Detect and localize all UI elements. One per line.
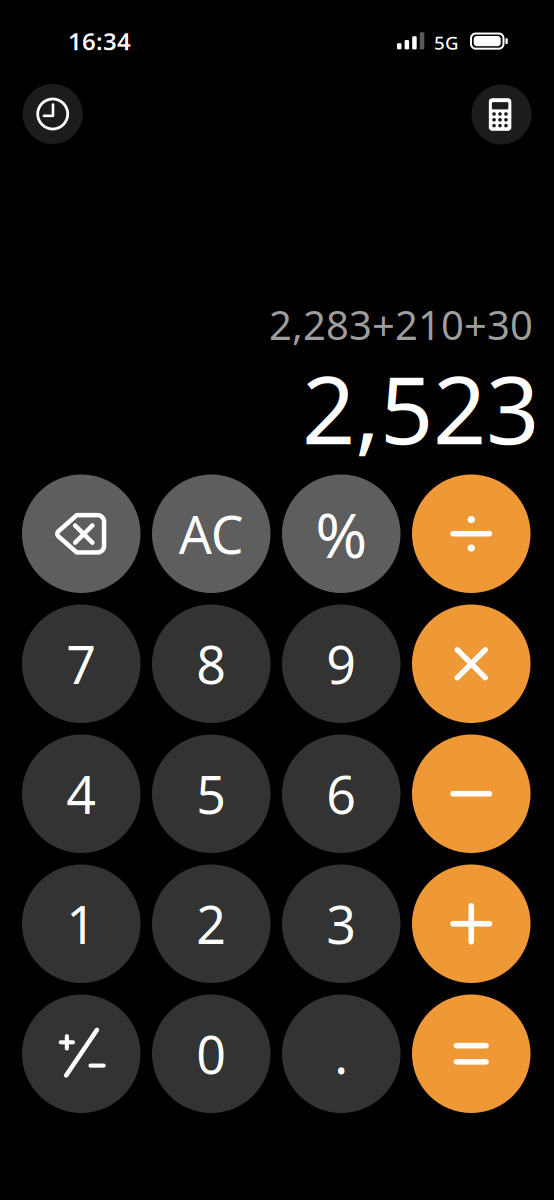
staticText: 0 [196, 1019, 226, 1088]
staticText: 1 [66, 889, 96, 958]
button[interactable]: AC [152, 474, 270, 593]
staticText: 7 [66, 629, 96, 698]
staticText: 3 [326, 889, 356, 958]
staticText: 5G [434, 30, 459, 55]
staticText: 6 [326, 759, 356, 828]
button[interactable]: 7 [22, 604, 140, 723]
staticText: AC [179, 499, 244, 568]
button[interactable]: History [23, 84, 83, 144]
button[interactable]: 8 [152, 604, 270, 723]
staticText: 2 [196, 889, 226, 958]
button[interactable]: 9 [282, 604, 400, 723]
button[interactable]: . [282, 994, 400, 1113]
staticText: 2,283+210+30 [269, 298, 533, 351]
button[interactable]: 5 [152, 734, 270, 853]
button[interactable]: % [282, 474, 400, 593]
button[interactable]: 0 [152, 994, 270, 1113]
button[interactable]: Switch calculator mode [471, 84, 531, 144]
button[interactable]: 6 [282, 734, 400, 853]
button[interactable]: Delete [22, 474, 140, 593]
staticText: 4 [66, 759, 96, 828]
button[interactable]: 3 [282, 864, 400, 983]
staticText: 2,523 [302, 346, 539, 470]
button[interactable]: Divide [412, 474, 530, 593]
button[interactable]: 2 [152, 864, 270, 983]
staticText: 9 [326, 629, 356, 698]
button[interactable]: 1 [22, 864, 140, 983]
button[interactable]: Toggle sign [22, 994, 140, 1113]
staticText: 5 [196, 759, 226, 828]
staticText: 16:34 [68, 25, 131, 57]
button[interactable]: Subtract [412, 734, 530, 853]
button[interactable]: Equals [412, 994, 530, 1113]
staticText: 8 [196, 629, 226, 698]
staticText: . [334, 1019, 348, 1088]
button[interactable]: Multiply [412, 604, 530, 723]
staticText: % [315, 492, 367, 575]
button[interactable]: 4 [22, 734, 140, 853]
button[interactable]: Add [412, 864, 530, 983]
